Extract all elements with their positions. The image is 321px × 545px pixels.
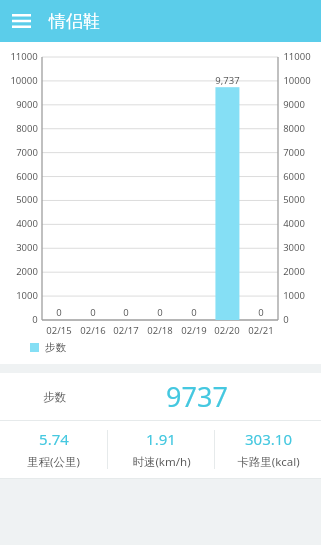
button[interactable]: 1.91 (108, 421, 214, 478)
staticText: 1000 (283, 289, 305, 302)
staticText: 11000 (283, 50, 311, 63)
staticText: 02/16 (80, 324, 106, 337)
staticText: 11000 (10, 50, 38, 63)
staticText: 5000 (283, 193, 305, 206)
staticText: 9737 (166, 378, 228, 415)
staticText: 时速(km/h) (132, 454, 191, 470)
staticText: 2000 (16, 265, 38, 278)
staticText: 3000 (283, 241, 305, 254)
staticText: 0 (56, 306, 62, 319)
staticText: 情侣鞋 (49, 11, 100, 32)
staticText: 6000 (283, 170, 305, 183)
staticText: 8000 (16, 122, 38, 135)
staticText: 9,737 (215, 74, 240, 87)
staticText: 7000 (16, 146, 38, 159)
staticText: 9000 (16, 98, 38, 111)
staticText: 6000 (16, 170, 38, 183)
staticText: 02/19 (181, 324, 207, 337)
staticText: 7000 (283, 146, 305, 159)
staticText: 02/15 (46, 324, 72, 337)
staticText: 0 (258, 306, 264, 319)
staticText: 3000 (16, 241, 38, 254)
staticText: 2000 (283, 265, 305, 278)
staticText: 里程(公里) (27, 454, 80, 470)
staticText: 步数 (45, 341, 66, 354)
staticText: 0 (90, 306, 96, 319)
staticText: 02/20 (214, 324, 240, 337)
button[interactable]: 步数 (0, 373, 321, 420)
staticText: 卡路里(kcal) (237, 454, 300, 470)
staticText: 0 (191, 306, 197, 319)
button[interactable]: Open navigation menu (0, 0, 42, 42)
staticText: 02/21 (248, 324, 274, 337)
staticText: 02/17 (113, 324, 139, 337)
staticText: 303.10 (245, 429, 292, 449)
staticText: 8000 (283, 122, 305, 135)
staticText: 步数 (43, 390, 66, 404)
staticText: 10000 (10, 74, 38, 87)
staticText: 4000 (16, 217, 38, 230)
staticText: 0 (157, 306, 163, 319)
staticText: 10000 (283, 74, 311, 87)
button[interactable]: 5.74 (0, 421, 107, 478)
staticText: 1.91 (146, 429, 176, 449)
staticText: 0 (123, 306, 129, 319)
staticText: 4000 (283, 217, 305, 230)
staticText: 0 (283, 313, 289, 326)
staticText: 02/18 (147, 324, 173, 337)
staticText: 5.74 (39, 429, 69, 449)
staticText: 5000 (16, 193, 38, 206)
staticText: 0 (32, 313, 38, 326)
button[interactable]: 303.10 (215, 421, 321, 478)
staticText: 9000 (283, 98, 305, 111)
button[interactable]: 步数 (30, 341, 66, 354)
staticText: 1000 (16, 289, 38, 302)
